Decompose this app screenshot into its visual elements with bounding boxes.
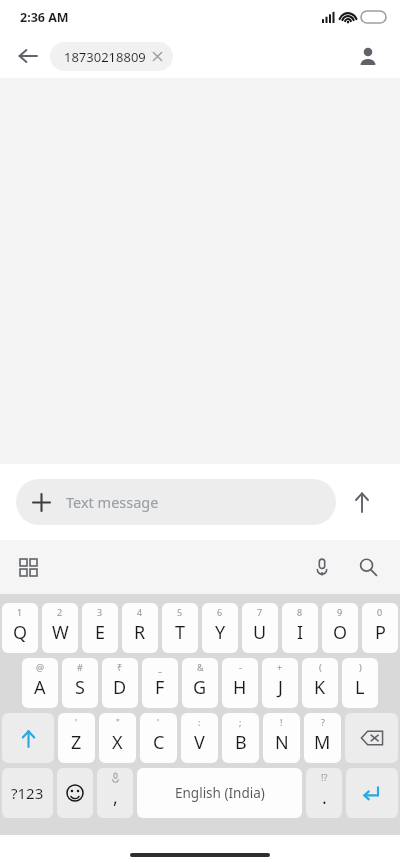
button[interactable]: 3 (82, 603, 118, 653)
staticText: 4 (137, 606, 143, 618)
staticText: 9 (337, 606, 343, 618)
staticText: Q (13, 620, 28, 645)
staticText: # (77, 661, 83, 673)
button[interactable]: & (182, 658, 218, 708)
button[interactable]: 7 (242, 603, 278, 653)
button[interactable]: " (99, 713, 136, 763)
button[interactable]: _ (142, 658, 178, 708)
button[interactable]: Toolbar (8, 547, 48, 587)
staticText: G (193, 675, 207, 700)
staticText: 2 (57, 606, 63, 618)
staticText: ' (75, 716, 78, 728)
staticText: 5 (177, 606, 183, 618)
button[interactable]: - (222, 658, 258, 708)
button[interactable]: 5 (162, 603, 198, 653)
staticText: ( (319, 661, 322, 673)
button[interactable]: Backspace (345, 713, 398, 763)
button[interactable]: ( (302, 658, 338, 708)
staticText: L (355, 675, 365, 700)
staticText: - (239, 661, 242, 673)
button[interactable]: 8 (282, 603, 318, 653)
button[interactable]: Enter (346, 768, 398, 818)
staticText: Z (71, 730, 82, 755)
button[interactable]: ' (58, 713, 95, 763)
button[interactable]: Emoji (57, 768, 93, 818)
staticText: ?123 (11, 783, 44, 803)
staticText: ! (280, 716, 283, 728)
button[interactable]: + (262, 658, 298, 708)
button[interactable]: 6 (202, 603, 238, 653)
button[interactable]: Text message (16, 479, 336, 525)
staticText: Text message (66, 492, 159, 512)
staticText: 2:36 AM (20, 9, 69, 26)
button[interactable]: 18730218809 (50, 42, 173, 71)
button[interactable]: @ (22, 658, 58, 708)
staticText: English (India) (175, 784, 265, 802)
staticText: T (175, 620, 186, 645)
button[interactable]: English (India) (137, 768, 302, 818)
button[interactable]: ) (342, 658, 378, 708)
staticText: + (277, 661, 283, 673)
staticText: S (75, 675, 85, 700)
staticText: . (322, 785, 327, 810)
staticText: N (275, 730, 289, 755)
staticText: : (198, 716, 201, 728)
button[interactable]: Contact details (348, 36, 388, 76)
staticText: U (253, 620, 267, 645)
staticText: I (297, 620, 304, 645)
button[interactable]: ' (140, 713, 177, 763)
staticText: F (155, 675, 165, 700)
staticText: 1 (17, 606, 23, 618)
button[interactable]: 4 (122, 603, 158, 653)
staticText: 7 (257, 606, 263, 618)
staticText: J (278, 675, 283, 700)
staticText: & (197, 661, 204, 673)
staticText: _ (158, 661, 162, 673)
button[interactable]: 0 (362, 603, 398, 653)
button[interactable]: ₹ (102, 658, 138, 708)
button[interactable]: ! (263, 713, 300, 763)
button[interactable]: ; (222, 713, 259, 763)
button[interactable]: 1 (2, 603, 38, 653)
staticText: , (113, 785, 118, 810)
staticText: P (375, 620, 386, 645)
staticText: O (333, 620, 348, 645)
staticText: 3 (97, 606, 103, 618)
button[interactable]: Voice input (302, 547, 342, 587)
button[interactable]: Back (8, 36, 48, 76)
staticText: R (134, 620, 146, 645)
button[interactable]: , (97, 768, 133, 818)
staticText: @ (36, 661, 45, 673)
staticText: ; (239, 716, 242, 728)
staticText: A (34, 675, 46, 700)
staticText: H (233, 675, 247, 700)
staticText: !? (321, 771, 328, 783)
staticText: E (95, 620, 106, 645)
staticText: D (113, 675, 127, 700)
staticText: V (194, 730, 205, 755)
staticText: 8 (297, 606, 303, 618)
button[interactable]: Shift (2, 713, 54, 763)
staticText: 0 (377, 606, 383, 618)
button[interactable]: ?123 (2, 768, 53, 818)
button[interactable]: Send (342, 482, 382, 522)
staticText: B (235, 730, 247, 755)
staticText: W (52, 620, 69, 645)
button[interactable]: 9 (322, 603, 358, 653)
staticText: " (116, 716, 120, 728)
button[interactable]: 2 (42, 603, 78, 653)
staticText: K (314, 675, 326, 700)
staticText: ' (157, 716, 160, 728)
staticText: 6 (217, 606, 223, 618)
staticText: 18730218809 (64, 48, 146, 66)
button[interactable]: # (62, 658, 98, 708)
staticText: ? (321, 716, 325, 728)
staticText: C (153, 730, 165, 755)
button[interactable]: : (181, 713, 218, 763)
button[interactable]: !? (306, 768, 342, 818)
staticText: X (112, 730, 123, 755)
staticText: ) (359, 661, 362, 673)
button[interactable]: ? (304, 713, 341, 763)
button[interactable]: Search (348, 547, 388, 587)
staticText: M (314, 730, 331, 755)
